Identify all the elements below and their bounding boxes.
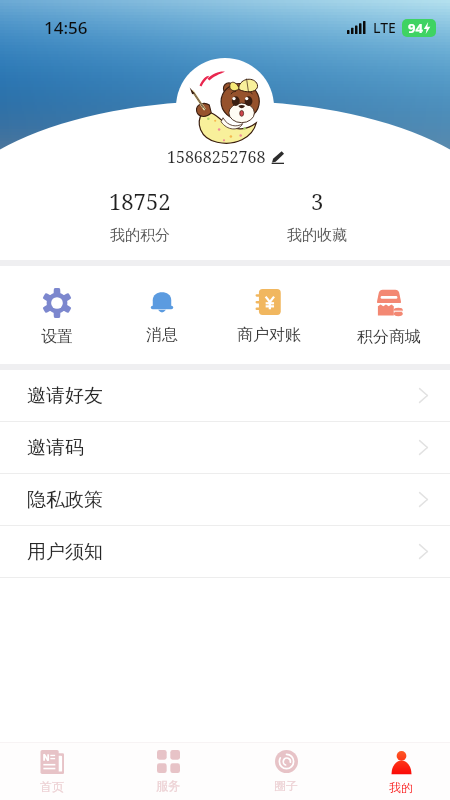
staticText: 我的积分 [110, 226, 170, 245]
staticText: 我的 [389, 780, 413, 795]
staticText: 15868252768 [167, 146, 266, 168]
staticText: 邀请好友 [27, 384, 103, 408]
staticText: 设置 [41, 327, 73, 347]
staticText: 圈子 [274, 778, 298, 793]
button[interactable]: 我的 [356, 750, 446, 800]
button[interactable]: 邀请码 [0, 422, 450, 473]
button[interactable]: 积分商城 [339, 288, 439, 347]
staticText: 积分商城 [357, 327, 421, 347]
button[interactable]: 15868252768 [0, 145, 450, 169]
button[interactable]: 设置 [7, 288, 107, 347]
staticText: 首页 [40, 779, 64, 794]
staticText: 我的收藏 [287, 226, 347, 245]
staticText: 3 [311, 186, 324, 216]
staticText: 94 [408, 19, 423, 37]
button[interactable]: 首页 [7, 750, 97, 800]
staticText: 服务 [156, 778, 180, 793]
staticText: 邀请码 [27, 436, 84, 460]
button[interactable]: 隐私政策 [0, 474, 450, 525]
button[interactable]: 服务 [123, 750, 213, 800]
button[interactable]: 消息 [112, 288, 212, 345]
button[interactable]: Avatar [176, 58, 274, 156]
staticText: 消息 [146, 325, 178, 345]
button[interactable]: 3 [257, 186, 377, 245]
button[interactable]: 圈子 [241, 750, 331, 800]
staticText: 用户须知 [27, 540, 103, 564]
staticText: 商户对账 [237, 325, 301, 345]
staticText: LTE [373, 18, 396, 37]
staticText: 14:56 [44, 16, 88, 39]
staticText: 隐私政策 [27, 488, 103, 512]
other: Edit nickname [271, 151, 284, 164]
button[interactable]: 商户对账 [219, 288, 319, 345]
button[interactable]: 用户须知 [0, 526, 450, 577]
button[interactable]: 邀请好友 [0, 370, 450, 421]
button[interactable]: 18752 [80, 186, 200, 245]
staticText: 18752 [109, 186, 171, 216]
